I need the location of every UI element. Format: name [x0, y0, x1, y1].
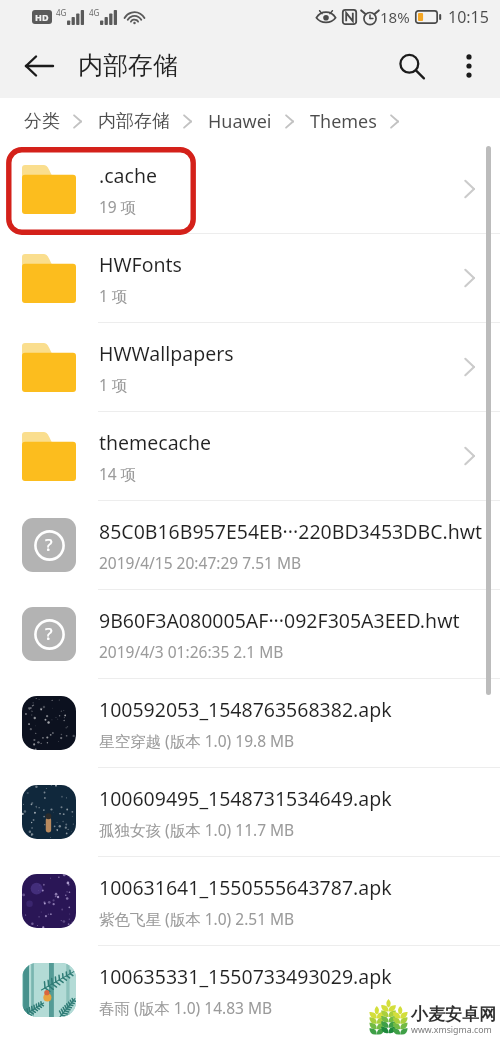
staticText: 2019/4/15 20:47:29 7.51 MB	[99, 552, 302, 573]
button[interactable]: themecache	[0, 412, 500, 501]
staticText: 100635331_1550733493029.apk	[99, 963, 392, 990]
button[interactable]: ?	[0, 501, 500, 590]
button[interactable]: 100609495_1548731534649.apk	[0, 768, 500, 857]
staticText: 孤独女孩 (版本 1.0) 11.7 MB	[99, 819, 295, 840]
button[interactable]: Huawei	[208, 109, 272, 134]
staticText: themecache	[99, 429, 212, 456]
staticText: 春雨 (版本 1.0) 14.83 MB	[99, 997, 273, 1018]
button[interactable]: HWFonts	[0, 234, 500, 323]
staticText: 10:15	[448, 6, 489, 28]
staticText: 4G	[89, 7, 100, 18]
button[interactable]: HWWallpapers	[0, 323, 500, 412]
staticText: HWWallpapers	[99, 340, 234, 367]
button[interactable]: Search	[385, 40, 437, 92]
staticText: 内部存储	[78, 50, 178, 81]
staticText: 9B60F3A080005AF···092F305A3EED.hwt	[99, 607, 460, 634]
button[interactable]: ?	[0, 590, 500, 679]
staticText: 2019/4/3 01:26:35 2.1 MB	[99, 641, 284, 662]
staticText: 100609495_1548731534649.apk	[99, 785, 392, 812]
button[interactable]: .cache	[0, 145, 500, 234]
staticText: HWFonts	[99, 251, 182, 278]
staticText: 紫色飞星 (版本 1.0) 2.51 MB	[99, 908, 295, 929]
staticText: 19 项	[99, 196, 137, 217]
staticText: HD	[35, 11, 49, 23]
staticText: 18%	[380, 7, 410, 27]
staticText: ?	[45, 622, 53, 645]
button[interactable]: 分类	[24, 110, 60, 133]
button[interactable]: Themes	[310, 109, 377, 134]
staticText: www.xmsigma.com	[411, 1024, 492, 1036]
staticText: ?	[45, 533, 53, 556]
button[interactable]: 100592053_1548763568382.apk	[0, 679, 500, 768]
staticText: 100592053_1548763568382.apk	[99, 696, 392, 723]
staticText: .cache	[99, 162, 157, 189]
staticText: 1 项	[99, 285, 128, 306]
staticText: 85C0B16B957E54EB···220BD3453DBC.hwt	[99, 518, 483, 545]
button[interactable]: More options	[443, 40, 495, 92]
staticText: 星空穿越 (版本 1.0) 19.8 MB	[99, 730, 295, 751]
button[interactable]: 100631641_1550555643787.apk	[0, 857, 500, 946]
button[interactable]: Back	[10, 37, 68, 95]
staticText: 小麦安卓网	[411, 1004, 496, 1025]
staticText: 1 项	[99, 374, 128, 395]
button[interactable]: 内部存储	[98, 110, 170, 133]
button[interactable]: 100635331_1550733493029.apk	[0, 946, 500, 1034]
staticText: 4G	[56, 7, 67, 18]
staticText: 14 项	[99, 463, 137, 484]
staticText: 100631641_1550555643787.apk	[99, 874, 392, 901]
